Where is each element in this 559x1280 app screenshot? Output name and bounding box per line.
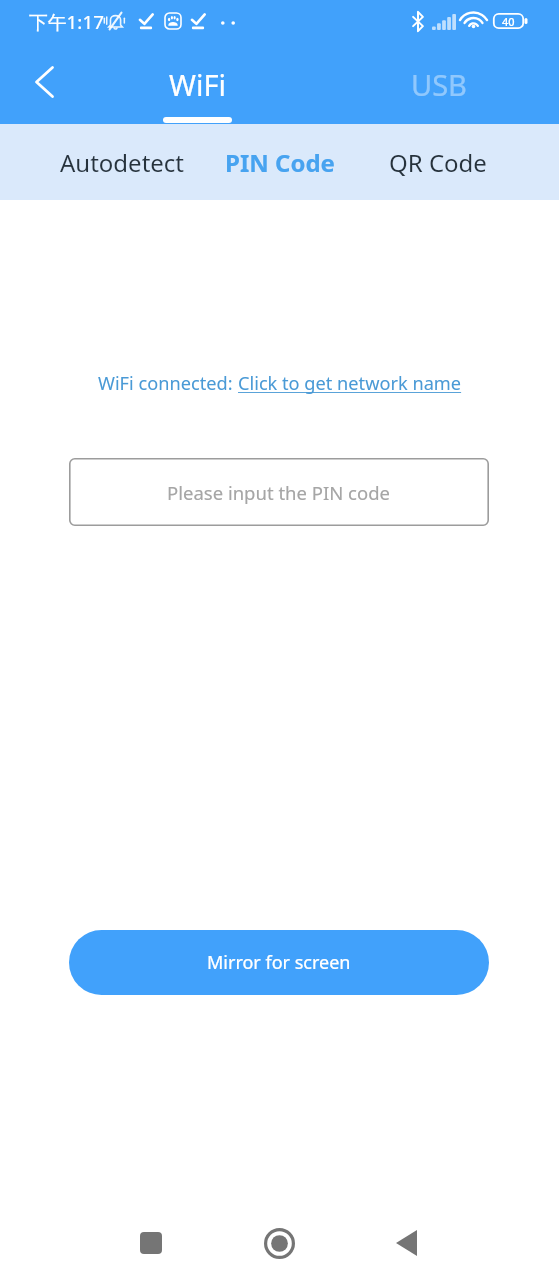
staticText: Please input the PIN code <box>167 480 390 505</box>
button[interactable]: WiFi <box>137 45 257 124</box>
button[interactable]: Back <box>376 1213 436 1273</box>
staticText: WiFi <box>169 65 226 104</box>
button[interactable]: USB <box>379 45 499 124</box>
button[interactable]: PIN Code <box>201 124 359 200</box>
button[interactable]: Home <box>249 1213 309 1273</box>
button[interactable]: QR Code <box>359 124 517 200</box>
button[interactable]: Autodetect <box>44 124 201 200</box>
staticText: PIN Code <box>225 146 335 179</box>
button[interactable]: Click to get network name <box>238 371 462 396</box>
staticText: USB <box>411 65 467 104</box>
staticText: Autodetect <box>60 146 185 179</box>
staticText: 下午1:17 <box>29 9 104 35</box>
button[interactable]: Back <box>15 53 73 111</box>
staticText: WiFi connected: <box>98 371 238 396</box>
button[interactable]: Please input the PIN code <box>69 458 489 526</box>
staticText: Click to get network name <box>238 371 462 396</box>
staticText: QR Code <box>389 146 487 179</box>
button[interactable]: Recent apps <box>121 1213 181 1273</box>
staticText: Mirror for screen <box>207 950 351 975</box>
button[interactable]: Mirror for screen <box>69 930 489 995</box>
staticText: 40 <box>502 14 515 29</box>
